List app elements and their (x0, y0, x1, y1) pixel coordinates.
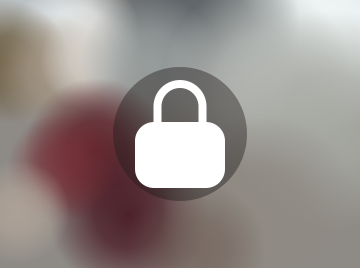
button[interactable]: Locked (113, 67, 247, 201)
